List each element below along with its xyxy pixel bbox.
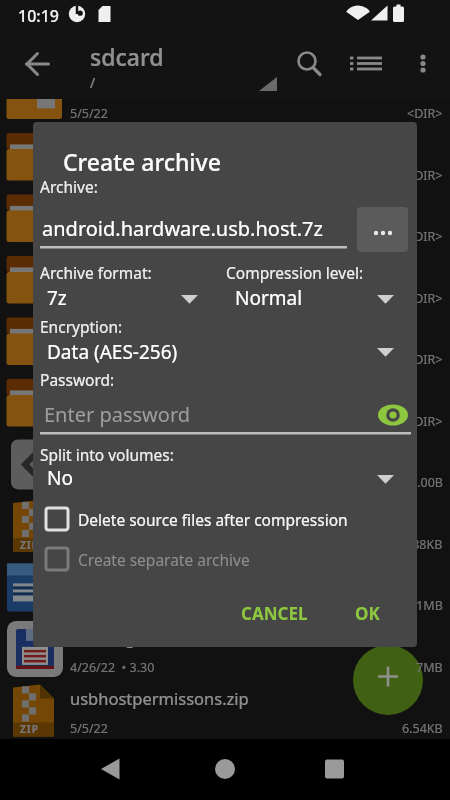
staticText: ..	[70, 441, 79, 463]
button[interactable]	[348, 44, 388, 84]
staticText: <DIR>	[407, 105, 443, 122]
staticText: Android	[70, 134, 132, 156]
staticText: 5/5/22	[70, 474, 108, 491]
button[interactable]: Normal	[226, 284, 396, 312]
button[interactable]	[357, 207, 408, 252]
button[interactable]: Data (AES-256)	[40, 338, 396, 366]
staticText: Movies	[70, 380, 125, 402]
staticText: 6.54KB	[402, 720, 443, 737]
staticText: Alarms	[70, 72, 125, 94]
staticText: OK	[355, 602, 380, 625]
staticText: ZIP	[20, 538, 39, 552]
staticText: <DIR>	[407, 351, 443, 368]
staticText: 188KB	[405, 536, 443, 553]
staticText: 5/5/22	[70, 351, 108, 368]
staticText: Split into volumes:	[40, 444, 174, 465]
staticText: 5/5/22	[70, 228, 108, 245]
button[interactable]	[353, 645, 423, 715]
staticText: 5/5/22	[70, 720, 108, 737]
button[interactable]	[404, 44, 444, 84]
staticText: <DIR>	[407, 413, 443, 430]
staticText: 0.00B	[410, 474, 443, 491]
button[interactable]	[200, 744, 250, 794]
staticText: 4/26/22 • 3.30	[70, 659, 155, 676]
button[interactable]: CANCEL	[228, 592, 320, 634]
staticText: archive.zip	[70, 503, 153, 525]
button[interactable]: 7z	[40, 284, 200, 312]
staticText: 7MB	[416, 659, 443, 676]
button[interactable]: No	[40, 464, 396, 492]
staticText: 7z	[47, 285, 67, 311]
button[interactable]	[288, 44, 328, 84]
staticText: CANCEL	[241, 602, 308, 625]
button[interactable]: android.hardware.usb.host.7z	[42, 215, 323, 242]
staticText: 5/5/22	[70, 105, 108, 122]
staticText: Data (AES-256)	[47, 339, 178, 365]
staticText: Compression level:	[226, 262, 364, 283]
staticText: Normal	[235, 285, 303, 311]
button[interactable]	[310, 744, 360, 794]
button[interactable]: Delete source files after compression	[40, 500, 390, 536]
staticText: Encryption:	[40, 316, 123, 337]
button[interactable]: Enter password	[40, 398, 411, 432]
staticText: Password:	[40, 369, 115, 390]
staticText: <DIR>	[407, 290, 443, 307]
button[interactable]	[85, 744, 135, 794]
staticText: 5/5/22	[70, 413, 108, 430]
staticText: Create archive	[63, 146, 221, 177]
staticText: usbhostpermissons.zip	[70, 687, 249, 709]
button[interactable]: Create separate archive	[40, 540, 390, 576]
button[interactable]	[14, 44, 58, 84]
staticText: 10:19	[18, 5, 59, 27]
staticText: Archive format:	[40, 262, 152, 283]
staticText: Delete source files after compression	[78, 509, 348, 530]
staticText: Enter password	[44, 401, 191, 428]
staticText: No	[47, 465, 73, 491]
staticText: disk.img	[70, 626, 136, 648]
staticText: sdcard	[90, 41, 164, 72]
staticText: backup.jar	[70, 564, 152, 586]
staticText: <DIR>	[407, 228, 443, 245]
button[interactable]	[0, 618, 450, 679]
staticText: 21MB	[409, 597, 443, 614]
staticText: 5/5/22	[70, 167, 108, 184]
staticText: <DIR>	[407, 167, 443, 184]
staticText: Download	[70, 318, 149, 340]
button[interactable]: OK	[336, 592, 398, 634]
staticText: /	[90, 73, 96, 92]
staticText: Documents	[70, 257, 159, 279]
staticText: Archive:	[40, 176, 98, 197]
button[interactable]	[0, 680, 450, 739]
staticText: ZIP	[20, 722, 39, 736]
staticText: Create separate archive	[78, 549, 250, 570]
